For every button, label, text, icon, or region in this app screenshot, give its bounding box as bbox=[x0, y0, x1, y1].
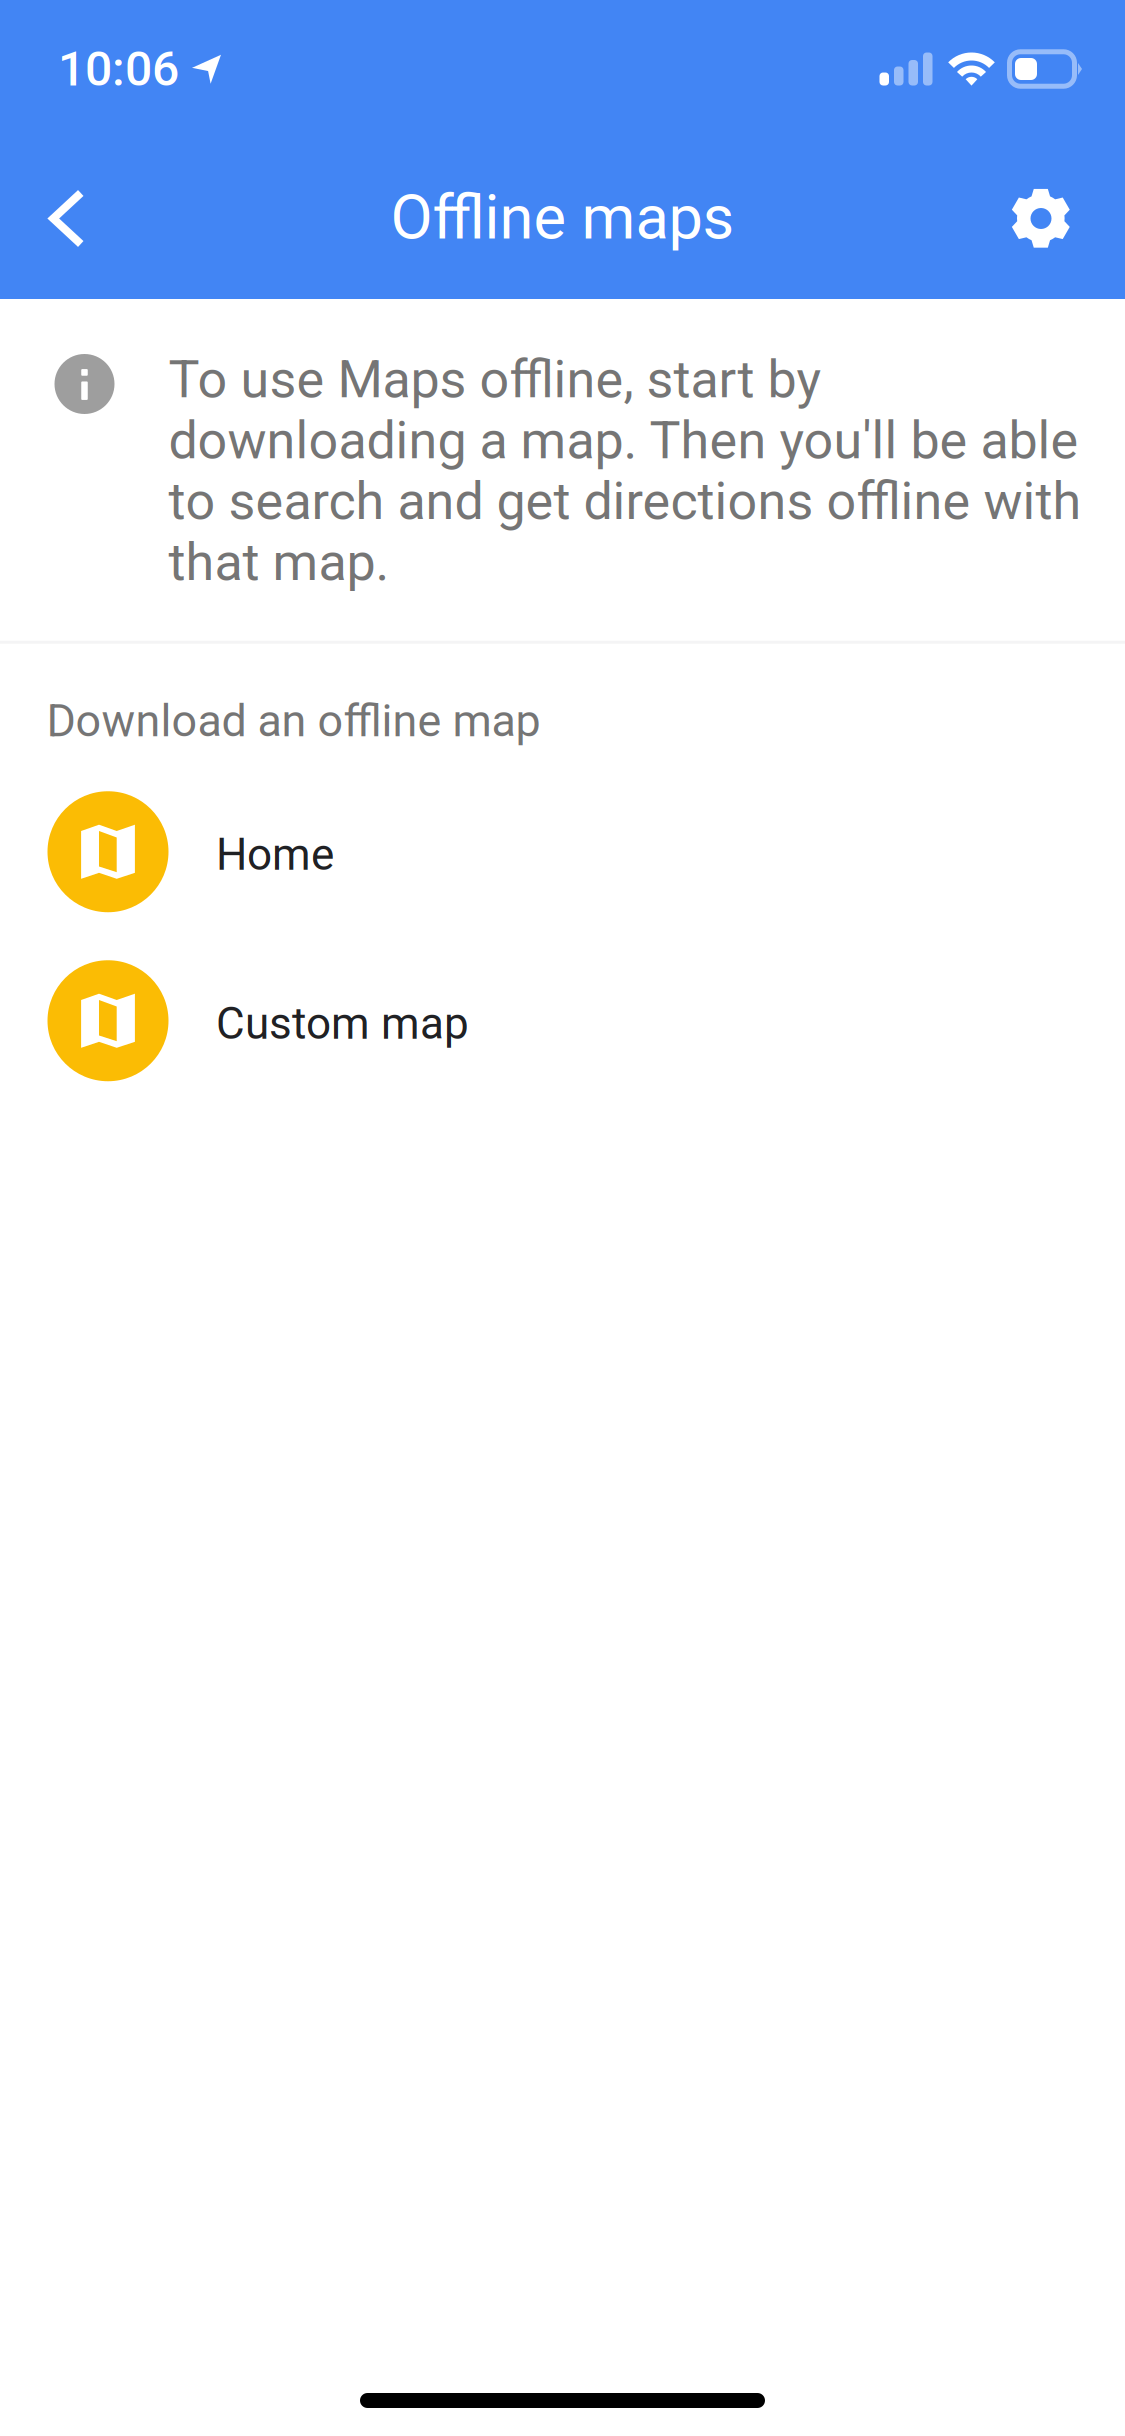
staticText: Download an offline map bbox=[46, 695, 540, 747]
button[interactable]: Back bbox=[11, 162, 123, 274]
button[interactable]: Home bbox=[0, 767, 1125, 936]
staticText: To use Maps offline, start by downloadin… bbox=[168, 349, 1081, 593]
staticText: Offline maps bbox=[390, 182, 734, 253]
staticText: Custom map bbox=[216, 998, 469, 1050]
staticText: 10:06 bbox=[58, 41, 179, 97]
button[interactable]: Settings bbox=[985, 162, 1097, 274]
button[interactable]: Custom map bbox=[0, 936, 1125, 1105]
staticText: Home bbox=[216, 829, 334, 881]
